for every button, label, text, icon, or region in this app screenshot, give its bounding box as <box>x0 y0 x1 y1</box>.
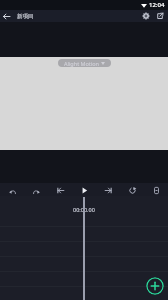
button[interactable]: Redo <box>24 183 48 196</box>
button[interactable]: Fit <box>144 183 168 196</box>
button[interactable]: Play <box>72 183 96 196</box>
staticText: 新项目 <box>17 13 34 20</box>
staticText: 12:04 <box>149 1 165 9</box>
button[interactable]: Export <box>153 10 167 22</box>
button[interactable]: Undo <box>0 183 24 196</box>
button[interactable]: Add media <box>146 277 164 295</box>
staticText: 00:00.00 <box>73 206 95 212</box>
staticText: Alight Motion <box>64 60 99 67</box>
button[interactable]: Skip to end <box>96 183 120 196</box>
button[interactable]: Settings <box>138 10 153 22</box>
button[interactable]: Back <box>0 10 13 22</box>
button[interactable]: Alight Motion <box>58 59 111 67</box>
button[interactable]: Loop <box>120 183 144 196</box>
button[interactable]: Skip to start <box>48 183 72 196</box>
